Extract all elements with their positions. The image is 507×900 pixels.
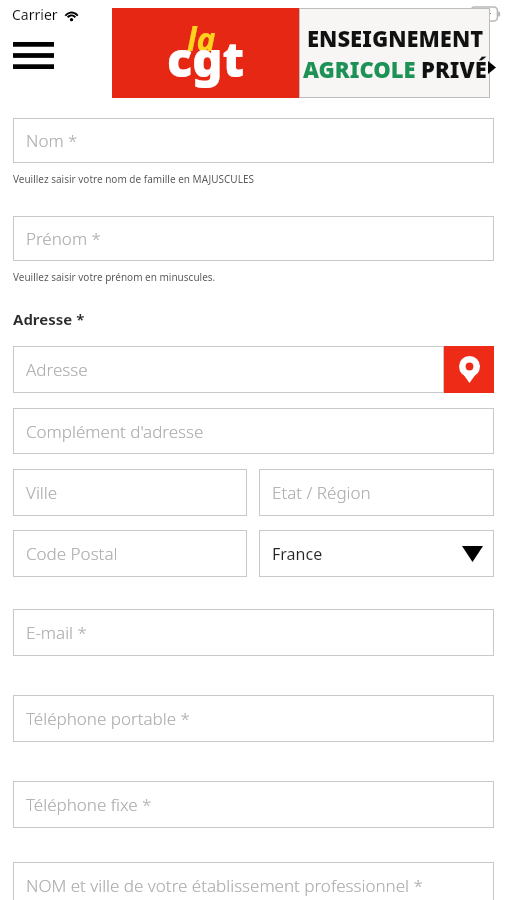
button[interactable]: Localiser mon adresse (444, 346, 494, 393)
button[interactable]: E-mail * (13, 609, 494, 656)
button[interactable]: Menu (9, 37, 57, 73)
staticText: 11:26 AM (219, 5, 278, 23)
staticText: ENSEIGNEMENT (307, 23, 484, 53)
button[interactable]: Complément d'adresse (13, 408, 494, 454)
staticText: Nom * (26, 129, 78, 152)
staticText: France (272, 543, 323, 565)
button[interactable]: NOM et ville de votre établissement prof… (13, 862, 494, 900)
button[interactable]: Etat / Région (259, 469, 494, 516)
button[interactable]: Nom * (13, 118, 494, 163)
staticText: Code Postal (26, 542, 118, 565)
button[interactable]: la (112, 8, 490, 98)
button[interactable]: Ville (13, 469, 247, 516)
button[interactable]: Suivant (483, 56, 501, 78)
button[interactable]: France (259, 530, 494, 577)
staticText: Complément d'adresse (26, 420, 204, 443)
button[interactable]: Prénom * (13, 216, 494, 261)
staticText: NOM et ville de votre établissement prof… (26, 874, 423, 897)
button[interactable]: Code Postal (13, 530, 247, 577)
staticText: Prénom * (26, 227, 101, 250)
staticText: la (187, 17, 216, 61)
staticText: Adresse * (13, 309, 85, 329)
staticText: Ville (26, 481, 58, 504)
staticText: Veuillez saisir votre nom de famille en … (13, 172, 254, 186)
staticText: PRIVÉ (421, 54, 487, 84)
staticText: Etat / Région (272, 481, 371, 504)
staticText: Téléphone fixe * (26, 793, 152, 816)
button[interactable]: Adresse (13, 346, 444, 393)
staticText: Veuillez saisir votre prénom en minuscul… (13, 270, 216, 284)
staticText: Carrier (12, 5, 58, 24)
staticText: cgt (167, 27, 245, 91)
staticText: AGRICOLE (303, 54, 416, 84)
staticText: Téléphone portable * (26, 707, 190, 730)
button[interactable]: Téléphone fixe * (13, 781, 494, 828)
staticText: E-mail * (26, 621, 87, 644)
staticText: Adresse (26, 358, 88, 381)
button[interactable]: Téléphone portable * (13, 695, 494, 742)
